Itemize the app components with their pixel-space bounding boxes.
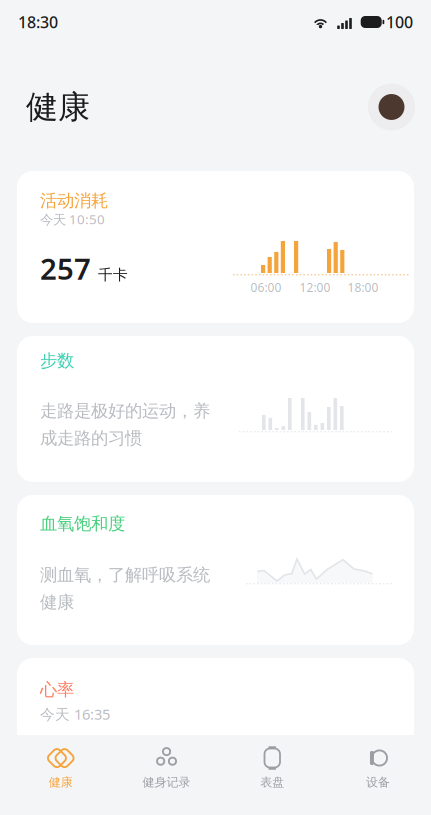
button[interactable]: 表盘 xyxy=(219,743,325,794)
button[interactable]: 血氧饱和度 xyxy=(17,495,414,645)
button[interactable]: 个人资料 xyxy=(368,83,415,130)
button[interactable]: 心率 xyxy=(17,658,414,810)
staticText: 18:00 xyxy=(347,279,378,295)
button[interactable]: 健康 xyxy=(8,743,114,794)
staticText: 成走路的习惯 xyxy=(40,428,142,449)
staticText: 18:30 xyxy=(18,11,58,33)
staticText: 设备 xyxy=(366,775,390,790)
staticText: 心率 xyxy=(40,679,74,700)
staticText: 100 xyxy=(386,11,413,33)
staticText: 今天 16:35 xyxy=(40,704,110,724)
staticText: 06:00 xyxy=(250,279,281,295)
staticText: 千卡 xyxy=(98,266,128,284)
button[interactable]: 设备 xyxy=(325,743,431,794)
staticText: 测血氧，了解呼吸系统 xyxy=(40,564,210,586)
staticText: 血氧饱和度 xyxy=(40,513,125,534)
button[interactable]: 步数 xyxy=(17,336,414,482)
staticText: 活动消耗 xyxy=(40,190,108,211)
staticText: 步数 xyxy=(40,350,74,371)
button[interactable]: 健身记录 xyxy=(114,743,219,794)
staticText: 今天 10:50 xyxy=(40,210,105,228)
staticText: 12:00 xyxy=(299,279,330,295)
staticText: 表盘 xyxy=(260,775,284,790)
staticText: 257 xyxy=(40,249,91,288)
staticText: 健康 xyxy=(49,775,73,790)
staticText: 健身记录 xyxy=(143,775,191,790)
staticText: 走路是极好的运动，养 xyxy=(40,400,210,422)
staticText: 健康 xyxy=(26,87,90,127)
staticText: 健康 xyxy=(40,592,74,613)
button[interactable]: 活动消耗 xyxy=(17,171,414,323)
